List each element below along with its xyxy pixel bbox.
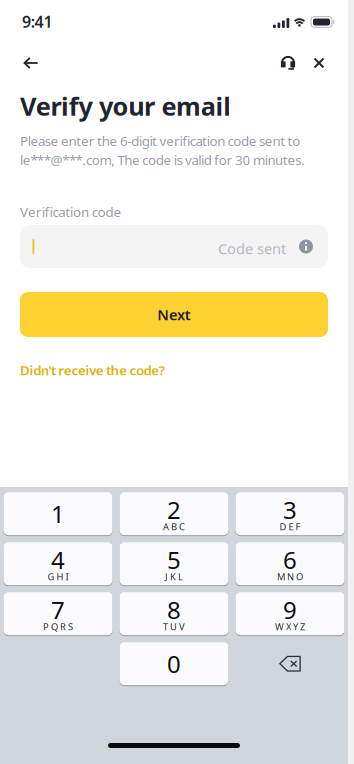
button[interactable]: 1 xyxy=(0,489,116,539)
staticText: 3 xyxy=(283,494,297,526)
staticText: Verify your email xyxy=(20,89,231,123)
staticText: 0 xyxy=(167,648,181,680)
button[interactable]: 4 xyxy=(0,539,116,589)
staticText: Didn't receive the code? xyxy=(20,361,165,379)
button[interactable]: Delete xyxy=(232,639,348,689)
staticText: 8 xyxy=(167,594,181,626)
button[interactable]: Didn't receive the code? xyxy=(0,0,308,24)
staticText: Verification code xyxy=(20,203,121,221)
staticText: 7 xyxy=(51,594,65,626)
staticText: A B C xyxy=(163,521,185,533)
staticText: le***@***.com, The code is valid for 30 … xyxy=(20,151,305,169)
button[interactable]: 0 xyxy=(116,639,232,689)
button[interactable]: 7 xyxy=(0,589,116,639)
staticText: W X Y Z xyxy=(275,621,305,633)
button[interactable]: 5 xyxy=(116,539,232,589)
button[interactable]: 8 xyxy=(116,589,232,639)
staticText: 1 xyxy=(51,498,65,530)
button[interactable]: Back xyxy=(0,0,30,34)
staticText: P Q R S xyxy=(43,621,73,633)
staticText: D E F xyxy=(279,521,300,533)
staticText: 4 xyxy=(51,544,65,576)
staticText: J K L xyxy=(165,571,183,583)
staticText: 9:41 xyxy=(22,11,52,32)
button[interactable]: 6 xyxy=(232,539,348,589)
staticText: 2 xyxy=(167,494,181,526)
button[interactable]: Close xyxy=(0,0,32,34)
staticText: Please enter the 6-digit verification co… xyxy=(20,132,300,150)
staticText: M N O xyxy=(277,571,303,583)
button[interactable]: Next xyxy=(0,0,308,45)
staticText: 6 xyxy=(283,544,297,576)
staticText: Code sent xyxy=(218,239,286,258)
button[interactable]: 2 xyxy=(116,489,232,539)
button[interactable]: Customer support xyxy=(0,0,34,34)
button[interactable]: 3 xyxy=(232,489,348,539)
button[interactable]: 9 xyxy=(232,589,348,639)
staticText: 5 xyxy=(167,544,181,576)
staticText: T U V xyxy=(163,621,185,633)
staticText: G H I xyxy=(47,571,68,583)
staticText: Next xyxy=(157,305,191,324)
staticText: 9 xyxy=(283,594,297,626)
